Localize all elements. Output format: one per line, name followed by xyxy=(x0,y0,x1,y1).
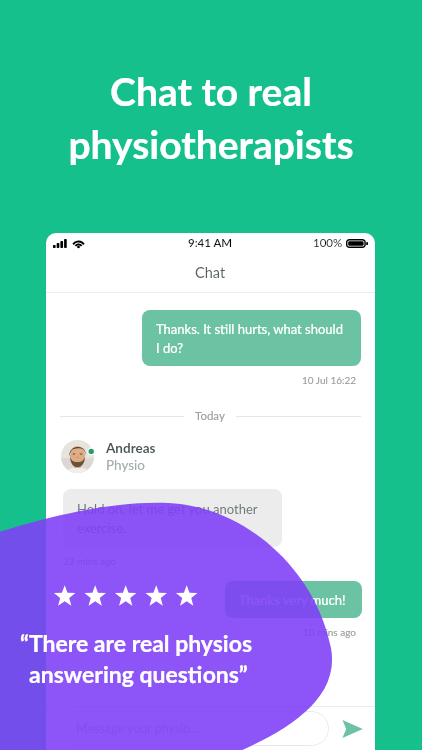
staticText: Chat to real xyxy=(110,68,312,115)
staticText: answering questions” xyxy=(29,660,248,688)
staticText: Thanks. It still hurts, what should I do… xyxy=(156,321,347,355)
staticText: Chat xyxy=(195,264,226,281)
staticText: physiotherapists xyxy=(68,121,354,168)
button[interactable]: Thanks very much! xyxy=(239,581,348,618)
staticText: Today xyxy=(195,409,225,423)
button[interactable]: Send message xyxy=(341,712,363,746)
staticText: 10 Jul 16:22 xyxy=(302,374,357,386)
staticText: 100% xyxy=(313,236,343,250)
button[interactable]: Message your physio... xyxy=(76,711,314,746)
staticText: Hold on, let me get you another exercise… xyxy=(77,501,268,535)
staticText: Physio xyxy=(106,457,146,473)
staticText: Thanks very much! xyxy=(239,592,346,608)
button[interactable]: Hold on, let me get you another exercise… xyxy=(77,501,268,535)
staticText: 10 mins ago xyxy=(303,626,357,638)
button[interactable]: Thanks. It still hurts, what should I do… xyxy=(156,321,347,355)
staticText: Andreas xyxy=(106,440,156,456)
staticText: 9:41 AM xyxy=(188,236,233,250)
staticText: 22 mins ago xyxy=(63,555,117,567)
staticText: “There are real physios xyxy=(20,629,253,657)
